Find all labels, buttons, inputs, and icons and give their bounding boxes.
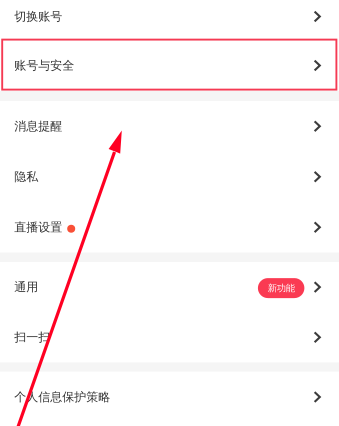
staticText: 通用 (14, 280, 38, 294)
button[interactable]: 直播设置 (0, 202, 339, 252)
staticText: 切换账号 (14, 9, 62, 24)
staticText: 新功能 (268, 282, 295, 294)
staticText: 扫一扫 (14, 330, 50, 345)
button[interactable]: 隐私 (0, 151, 339, 202)
button[interactable]: 扫一扫 (0, 312, 339, 362)
staticText: 账号与安全 (14, 58, 74, 73)
staticText: 直播设置 (14, 220, 62, 235)
button[interactable]: 个人信息保护策略 (0, 372, 339, 422)
button[interactable]: 消息提醒 (0, 101, 339, 151)
button[interactable]: 通用 (0, 262, 339, 312)
button[interactable]: 切换账号 (0, 0, 339, 40)
staticText: 个人信息保护策略 (14, 390, 110, 404)
staticText: 消息提醒 (14, 119, 62, 134)
button[interactable]: 账号与安全 (0, 40, 339, 91)
staticText: 隐私 (14, 169, 38, 184)
